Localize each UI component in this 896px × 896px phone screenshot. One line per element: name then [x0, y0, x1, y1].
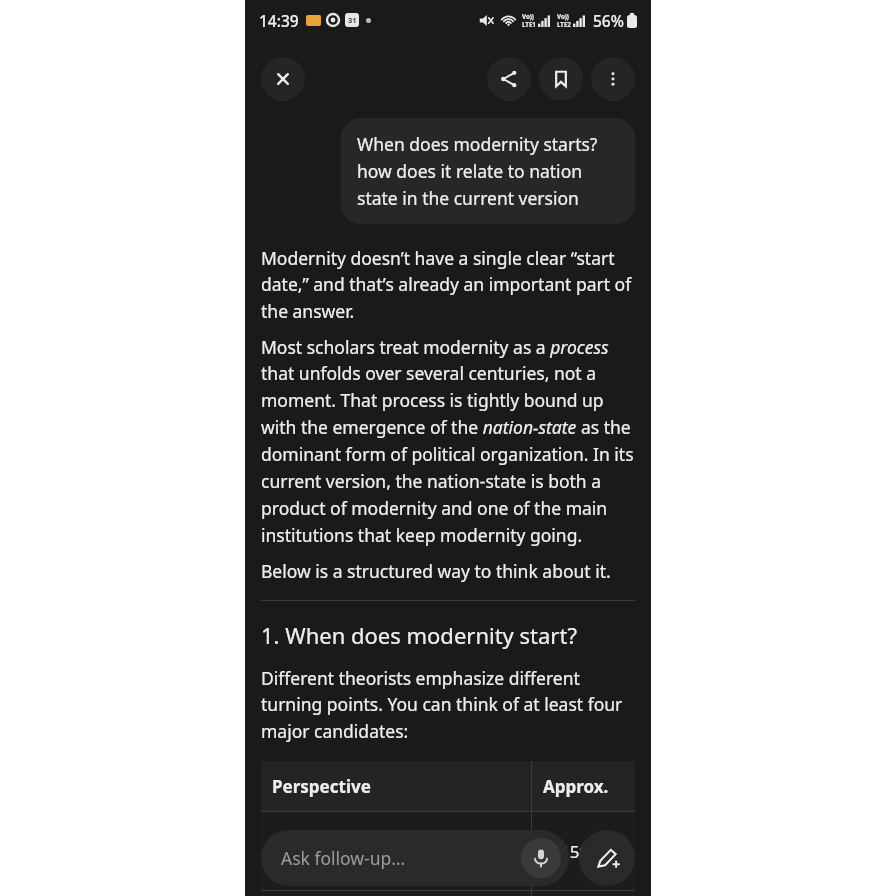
- staticText: LTE2: [557, 20, 571, 28]
- staticText: Vo)): [557, 12, 569, 20]
- button[interactable]: When does modernity starts? how does it …: [341, 118, 635, 224]
- staticText: Most scholars treat modernity as a proce…: [261, 335, 635, 547]
- staticText: Approx. period: [543, 775, 635, 798]
- staticText: 14:39: [259, 10, 299, 31]
- staticText: When does modernity starts? how does it …: [357, 132, 619, 210]
- button[interactable]: Share: [487, 57, 531, 101]
- button[interactable]: New chat: [579, 830, 635, 886]
- staticText: 56%: [593, 10, 624, 31]
- button[interactable]: Ask follow-up…: [261, 830, 569, 886]
- staticText: Vo)): [522, 12, 534, 20]
- staticText: LTE1: [522, 20, 536, 28]
- staticText: 31: [348, 15, 357, 25]
- staticText: Modernity doesn’t have a single clear “s…: [261, 246, 635, 323]
- button[interactable]: Bookmark: [539, 57, 583, 101]
- staticText: Perspective: [272, 775, 371, 798]
- button[interactable]: Close: [261, 57, 305, 101]
- staticText: Different theorists emphasize different …: [261, 666, 635, 743]
- button[interactable]: Voice input: [521, 838, 561, 878]
- staticText: 1. When does modernity start?: [261, 620, 577, 650]
- button[interactable]: More options: [591, 57, 635, 101]
- staticText: Below is a structured way to think about…: [261, 559, 611, 583]
- staticText: Ask follow-up…: [281, 846, 406, 870]
- staticText: Early-modern state & capitalism: [272, 840, 527, 863]
- staticText: c. 1500–1650: [543, 840, 635, 863]
